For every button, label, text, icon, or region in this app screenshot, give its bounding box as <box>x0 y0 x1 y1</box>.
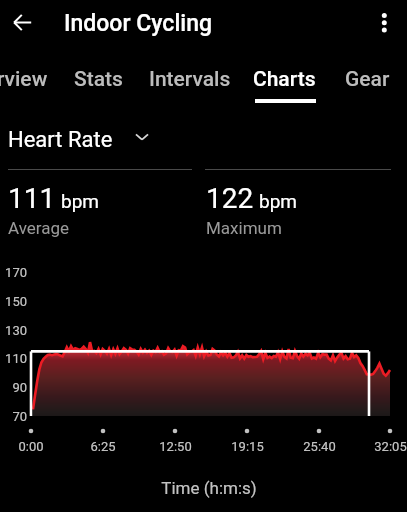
button[interactable]: Overview <box>0 52 62 98</box>
staticText: Maximum <box>206 218 282 238</box>
staticText: bpm <box>61 190 99 212</box>
staticText: Stats <box>74 67 123 92</box>
staticText: 170 <box>5 265 27 280</box>
staticText: 130 <box>5 323 27 338</box>
staticText: Heart Rate <box>8 127 113 153</box>
staticText: Indoor Cycling <box>64 10 212 37</box>
button[interactable]: Heart Rate <box>8 127 149 153</box>
staticText: Average <box>8 218 70 238</box>
staticText: 19:15 <box>231 439 264 454</box>
staticText: 110 <box>5 351 27 366</box>
staticText: 90 <box>12 380 27 395</box>
staticText: Intervals <box>149 67 231 92</box>
staticText: bpm <box>259 190 297 212</box>
staticText: 70 <box>12 409 27 424</box>
staticText: 32:05 <box>374 439 407 454</box>
staticText: Overview <box>0 67 48 92</box>
button[interactable]: Charts <box>237 52 332 98</box>
staticText: 6:25 <box>90 439 116 454</box>
staticText: 122 <box>206 182 254 215</box>
staticText: Time (h:m:s) <box>161 478 257 498</box>
staticText: 0:00 <box>18 439 44 454</box>
button[interactable]: More options <box>363 1 404 42</box>
button[interactable]: Gear <box>331 52 404 98</box>
button[interactable]: Intervals <box>134 52 246 98</box>
button[interactable]: Stats <box>59 52 137 98</box>
staticText: 150 <box>5 294 27 309</box>
staticText: 111 <box>8 182 56 215</box>
staticText: 25:40 <box>303 439 336 454</box>
button[interactable]: Back <box>2 2 42 42</box>
staticText: Charts <box>253 67 316 92</box>
staticText: Gear <box>345 67 390 92</box>
staticText: 12:50 <box>159 439 192 454</box>
